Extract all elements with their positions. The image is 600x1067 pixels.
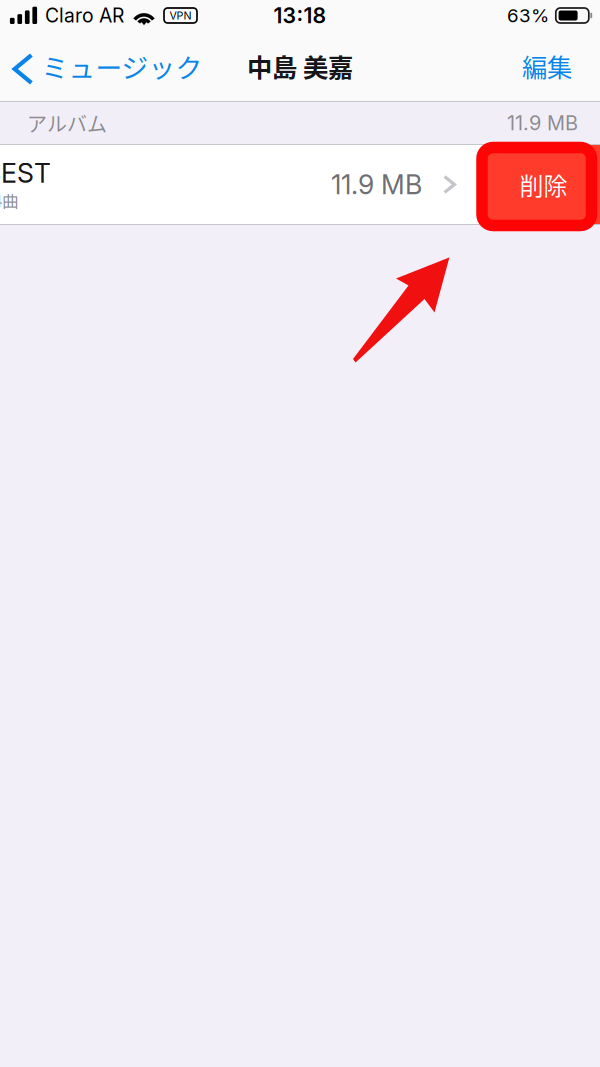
staticText: VPN bbox=[169, 9, 191, 22]
button[interactable]: ミュージック bbox=[0, 31, 212, 101]
staticText: Claro AR bbox=[45, 4, 124, 27]
staticText: 削除 bbox=[519, 167, 567, 202]
staticText: BEST bbox=[0, 157, 51, 189]
staticText: 13:18 bbox=[273, 3, 326, 28]
staticText: 63% bbox=[507, 4, 549, 27]
button[interactable]: 削除 bbox=[487, 145, 600, 224]
staticText: 11.9 MB bbox=[507, 111, 578, 135]
button[interactable]: 編集 bbox=[506, 31, 600, 101]
staticText: 14曲 bbox=[0, 188, 19, 212]
staticText: 11.9 MB bbox=[331, 168, 422, 201]
staticText: アルバム bbox=[27, 108, 107, 137]
staticText: ミュージック bbox=[41, 47, 202, 85]
staticText: 中島 美嘉 bbox=[247, 48, 353, 84]
staticText: 編集 bbox=[522, 48, 572, 84]
